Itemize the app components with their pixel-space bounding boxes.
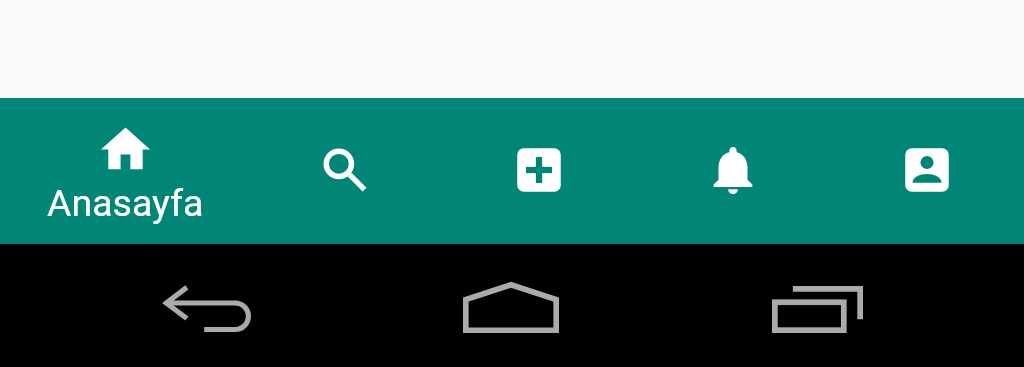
button[interactable]: Back — [133, 244, 283, 367]
button[interactable]: Anasayfa — [0, 98, 248, 244]
staticText: Anasayfa — [47, 181, 204, 225]
button[interactable]: Search — [248, 98, 442, 244]
button[interactable]: Add — [442, 98, 636, 244]
button[interactable]: Profile — [830, 98, 1024, 244]
button[interactable]: Home — [436, 244, 586, 367]
button[interactable]: Recent apps — [742, 244, 892, 367]
button[interactable]: Notifications — [636, 98, 830, 244]
